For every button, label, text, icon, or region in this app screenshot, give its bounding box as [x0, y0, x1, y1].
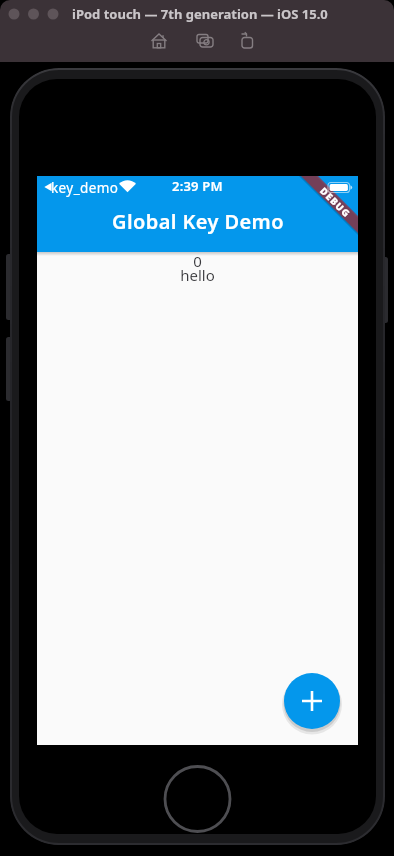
button[interactable] — [284, 673, 340, 729]
staticText: key_demo — [51, 179, 119, 197]
staticText: 2:39 PM — [172, 177, 223, 195]
staticText: iPod touch — 7th generation — iOS 15.0 — [72, 5, 328, 23]
staticText: DEBUG — [318, 184, 353, 220]
staticText: 0 hello — [180, 251, 215, 285]
staticText: Global Key Demo — [112, 208, 284, 235]
